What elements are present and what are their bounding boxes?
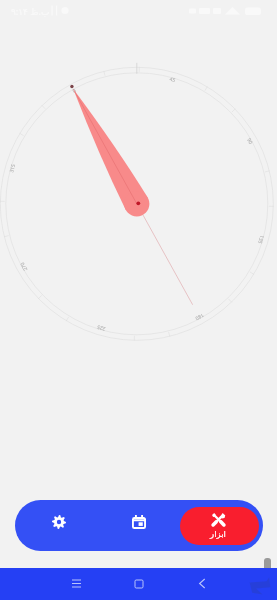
button[interactable]: Recents xyxy=(68,575,85,592)
button[interactable]: Home xyxy=(130,575,147,592)
button[interactable]: Settings xyxy=(15,500,103,551)
staticText: ابزار xyxy=(210,529,226,539)
button[interactable]: Back xyxy=(193,575,210,592)
button[interactable]: Calendar xyxy=(103,500,180,551)
button[interactable]: ابزار xyxy=(180,507,259,545)
